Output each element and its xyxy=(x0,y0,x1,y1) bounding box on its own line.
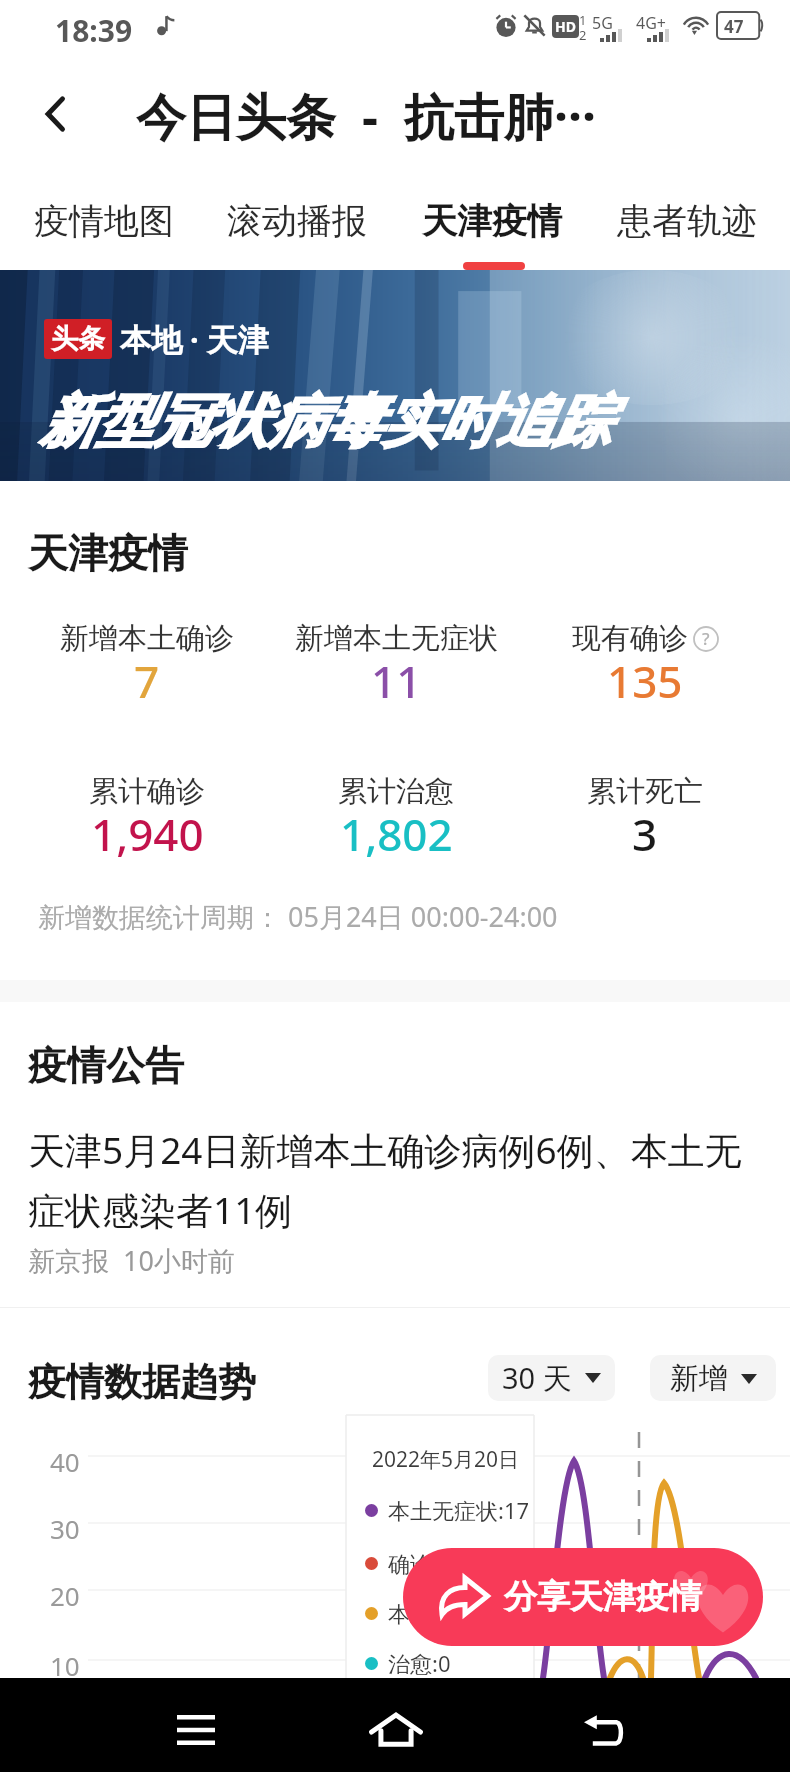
button[interactable]: 新增本土确诊 xyxy=(22,620,272,717)
staticText: 2 xyxy=(579,26,587,44)
button[interactable]: Recents xyxy=(151,1683,241,1772)
staticText: 本地 · 天津 xyxy=(120,318,269,360)
staticText: 头条 xyxy=(51,322,105,356)
button[interactable]: 累计死亡 xyxy=(520,773,770,870)
staticText: 135 xyxy=(607,651,683,711)
staticText: HD xyxy=(555,17,576,36)
staticText: 今日头条 - 抗击肺··· xyxy=(136,82,597,150)
button[interactable]: Home xyxy=(351,1683,441,1772)
staticText: 确诊:6 xyxy=(388,1548,451,1578)
staticText: 1,802 xyxy=(340,804,453,864)
button[interactable]: 现有确诊 xyxy=(520,620,770,717)
staticText: 天津5月24日新增本土确诊病例6例、本土无 症状感染者11例 xyxy=(28,1124,768,1235)
button[interactable]: Back xyxy=(30,88,82,140)
staticText: 滚动播报 xyxy=(227,199,367,243)
button[interactable]: 分享天津疫情 xyxy=(403,1548,763,1646)
button[interactable]: 患者轨迹 xyxy=(597,180,777,262)
staticText: 3 xyxy=(632,804,658,864)
staticText: 累计确诊 xyxy=(89,773,205,810)
staticText: 2022年5月20日 xyxy=(372,1445,520,1474)
button[interactable]: 新增 xyxy=(650,1355,776,1401)
button[interactable]: 累计确诊 xyxy=(22,773,272,870)
staticText: 患者轨迹 xyxy=(617,199,757,243)
staticText: 治愈:0 xyxy=(388,1648,451,1678)
button[interactable]: 天津疫情 xyxy=(402,180,582,262)
staticText: 疫情公告 xyxy=(28,1041,184,1090)
staticText: 10 xyxy=(50,1648,80,1683)
button[interactable]: Back xyxy=(559,1683,649,1772)
staticText: 18:39 xyxy=(55,10,133,51)
staticText: 疫情地图 xyxy=(34,199,174,243)
button[interactable]: 新增本土无症状 xyxy=(271,620,521,717)
button[interactable]: 30 天 xyxy=(488,1355,615,1401)
staticText: 11 xyxy=(371,651,422,711)
staticText: 5G xyxy=(592,12,613,34)
staticText: 1,940 xyxy=(91,804,204,864)
staticText: 新增 xyxy=(670,1360,728,1397)
staticText: 天津疫情 xyxy=(28,528,188,578)
staticText: 本土:11 xyxy=(388,1598,464,1628)
button[interactable]: 滚动播报 xyxy=(207,180,387,262)
staticText: 4G+ xyxy=(636,12,666,34)
staticText: 7 xyxy=(134,651,160,711)
staticText: 新型冠状病毒实时追踪 xyxy=(40,386,790,458)
staticText: 累计治愈 xyxy=(338,773,454,810)
staticText: 47 xyxy=(724,15,744,38)
staticText: 分享天津疫情 xyxy=(504,1576,702,1618)
staticText: 疫情数据趋势 xyxy=(28,1358,256,1406)
staticText: 1 xyxy=(579,11,587,29)
staticText: 天津疫情 xyxy=(422,199,562,243)
staticText: 新增本土确诊 xyxy=(60,620,234,657)
staticText: 累计死亡 xyxy=(587,773,703,810)
staticText: 30 xyxy=(50,1511,80,1546)
button[interactable]: 疫情地图 xyxy=(14,180,194,262)
staticText: 20 xyxy=(50,1578,80,1613)
staticText: 30 天 xyxy=(502,1358,572,1398)
staticText: 现有确诊 xyxy=(572,620,688,657)
staticText: 新增本土无症状 xyxy=(295,620,498,657)
staticText: 40 xyxy=(50,1444,80,1479)
button[interactable]: 累计治愈 xyxy=(271,773,521,870)
staticText: ? xyxy=(702,627,710,650)
staticText: 本土无症状:17 xyxy=(388,1495,530,1525)
staticText: 新京报 10小时前 xyxy=(28,1242,235,1279)
staticText: 新增数据统计周期： 05月24日 00:00-24:00 xyxy=(38,898,558,935)
